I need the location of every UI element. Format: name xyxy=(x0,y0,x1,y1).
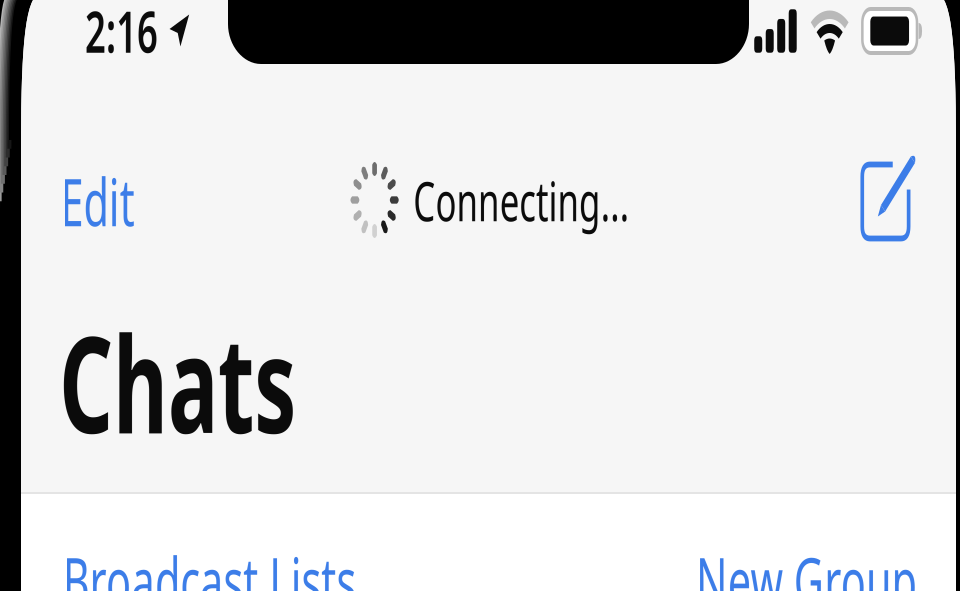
staticText: Chats xyxy=(0,294,190,470)
staticText: New Group xyxy=(820,537,960,591)
staticText: Broadcast Lists xyxy=(0,537,285,591)
button[interactable]: Broadcast Lists xyxy=(0,532,293,591)
staticText: Connecting... xyxy=(375,164,715,236)
button[interactable]: New Group xyxy=(738,532,960,591)
